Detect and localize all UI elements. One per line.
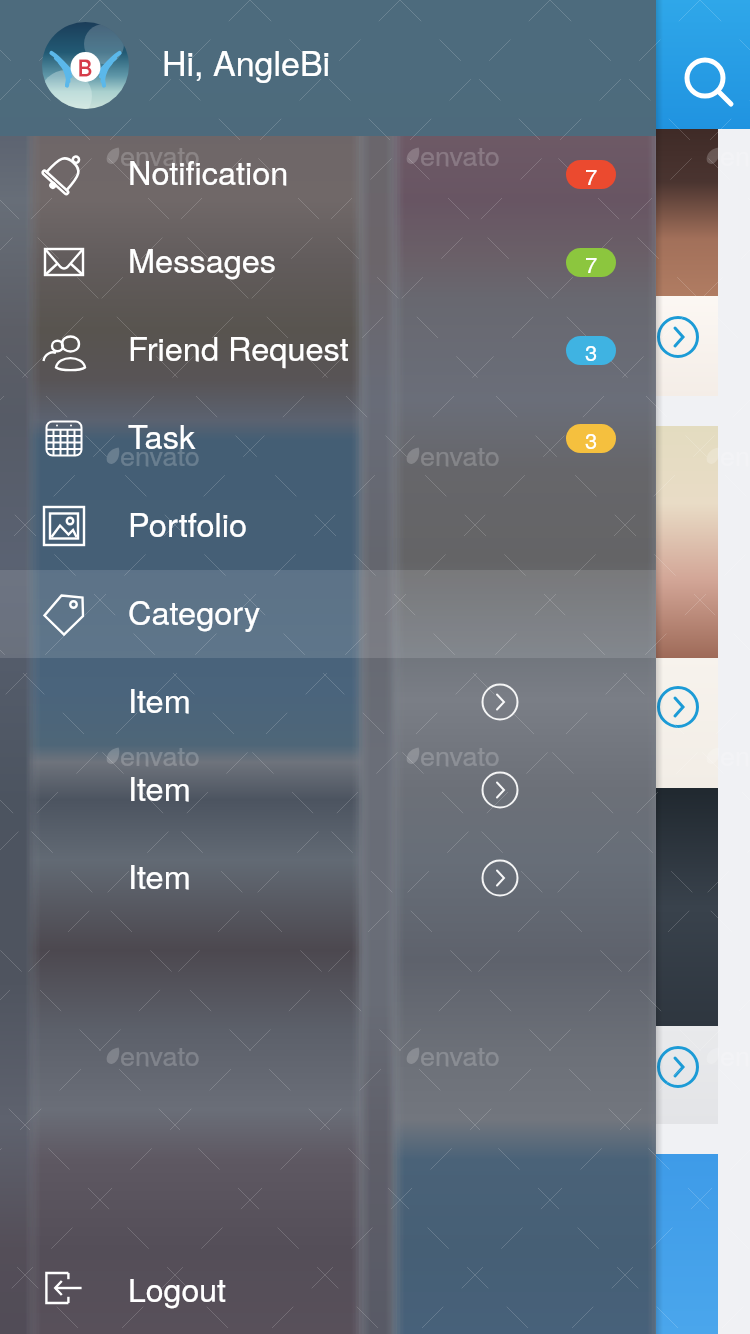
staticText: Portfolio xyxy=(128,500,248,547)
button[interactable]: Item xyxy=(0,746,656,834)
button[interactable]: Logout xyxy=(0,1244,656,1332)
button[interactable]: Friend Request xyxy=(0,306,656,394)
button[interactable]: Messages xyxy=(0,218,656,306)
staticText: Task xyxy=(128,412,196,459)
staticText: envato xyxy=(420,435,500,474)
staticText: envato xyxy=(120,135,200,174)
staticText: envato xyxy=(120,1035,200,1074)
button[interactable]: B xyxy=(0,0,656,130)
staticText: 3 xyxy=(585,336,598,365)
staticText: Category xyxy=(128,588,261,635)
staticText: Messages xyxy=(128,236,277,283)
staticText: 7 xyxy=(585,160,598,189)
staticText: 3 xyxy=(585,424,598,453)
button[interactable]: Item xyxy=(0,834,656,922)
staticText: Logout xyxy=(128,1265,226,1311)
staticText: Item xyxy=(128,764,191,811)
staticText: B xyxy=(78,52,93,82)
button[interactable]: Task xyxy=(0,394,656,482)
staticText: Hi, AngleBi xyxy=(162,37,331,86)
button[interactable]: Category xyxy=(0,570,656,658)
staticText: Notification xyxy=(128,148,289,195)
staticText: envato xyxy=(420,1035,500,1074)
staticText: envato xyxy=(420,135,500,174)
staticText: 7 xyxy=(585,248,598,277)
button[interactable]: Portfolio xyxy=(0,482,656,570)
button[interactable]: Item xyxy=(0,658,656,746)
staticText: envato xyxy=(120,735,200,774)
staticText: envato xyxy=(420,735,500,774)
staticText: Item xyxy=(128,852,191,899)
staticText: envato xyxy=(120,435,200,474)
staticText: Friend Request xyxy=(128,324,349,371)
button[interactable]: Notification xyxy=(0,130,656,218)
staticText: Item xyxy=(128,676,191,723)
button[interactable]: Search xyxy=(683,57,739,113)
